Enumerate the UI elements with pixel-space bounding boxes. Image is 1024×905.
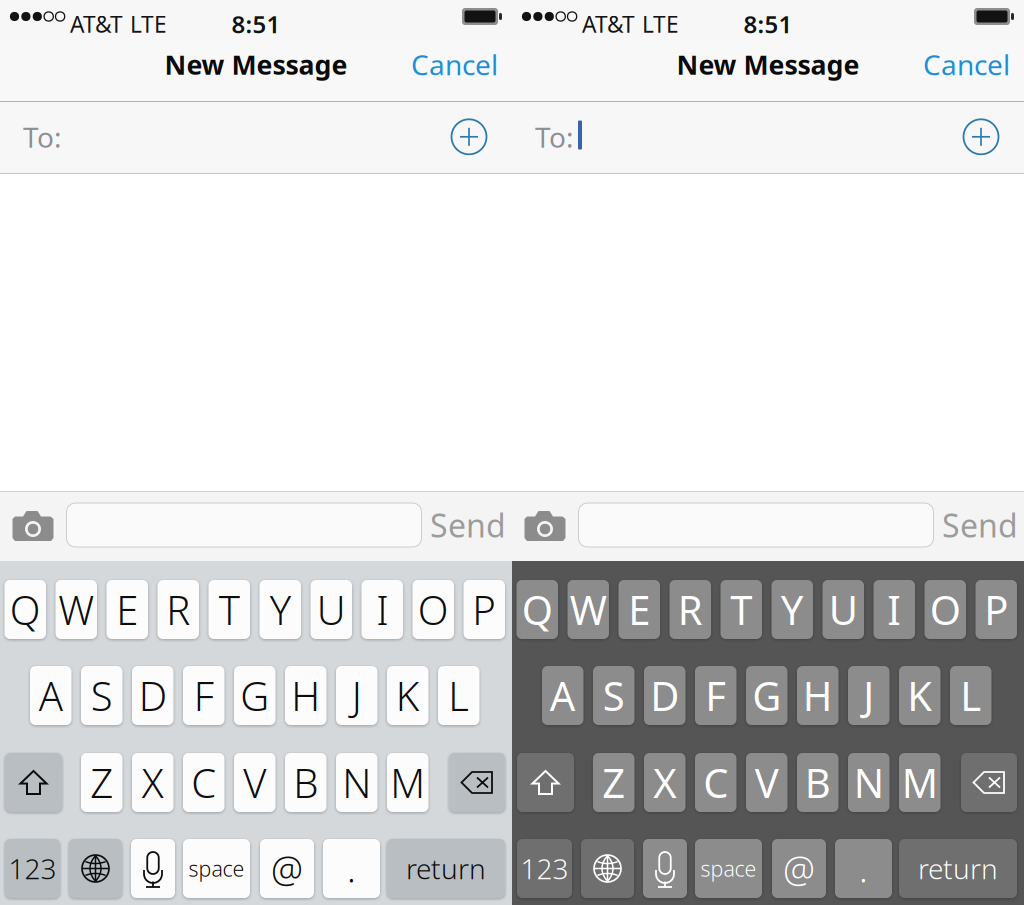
button[interactable]: . [323,839,380,898]
staticText: U [317,583,346,636]
button[interactable]: K [899,666,940,725]
button[interactable]: W [567,580,609,639]
button[interactable]: Next keyboard [69,839,122,898]
button[interactable]: I [361,580,403,639]
button[interactable]: O [412,580,454,639]
button[interactable]: M [899,753,940,812]
staticText: New Message [164,47,347,82]
button[interactable]: N [848,753,889,812]
button[interactable]: Send [940,503,1020,547]
button[interactable]: return [387,839,505,898]
staticText: Y [270,583,291,636]
staticText: . [859,845,868,892]
button[interactable]: Z [593,753,634,812]
button[interactable]: E [618,580,660,639]
staticText: 8:51 [743,8,792,40]
button[interactable]: S [81,666,122,725]
button[interactable]: Camera [524,511,565,541]
staticText: Y [781,583,804,636]
button[interactable]: return [899,839,1017,898]
staticText: . [347,845,356,892]
button[interactable]: J [848,666,889,725]
button[interactable]: P [975,580,1017,639]
button[interactable]: 123 [5,839,60,898]
button[interactable]: R [669,580,711,639]
button[interactable]: Q [4,580,46,639]
button[interactable]: I [873,580,915,639]
button[interactable]: Y [259,580,301,639]
button[interactable]: D [132,666,173,725]
button[interactable]: G [234,666,275,725]
button[interactable]: Add contact [451,119,486,154]
button[interactable]: X [132,753,173,812]
button[interactable]: Q [516,580,558,639]
button[interactable]: F [695,666,736,725]
staticText: J [352,669,362,722]
button[interactable]: Z [81,753,122,812]
button[interactable]: Cancel [388,42,498,86]
button[interactable]: Next keyboard [581,839,634,898]
button[interactable]: G [746,666,787,725]
button[interactable]: A [542,666,583,725]
button[interactable]: B [285,753,326,812]
staticText: return [918,850,998,887]
button[interactable]: Camera [12,511,53,541]
button[interactable]: Delete [961,753,1017,812]
staticText: W [570,583,607,636]
staticText: New Message [676,47,859,82]
button[interactable]: T [208,580,250,639]
button[interactable]: Delete [449,753,505,812]
button[interactable]: X [644,753,685,812]
button[interactable]: Send [428,503,508,547]
staticText: To: [535,118,574,156]
button[interactable]: C [695,753,736,812]
button[interactable]: R [157,580,199,639]
button[interactable]: S [593,666,634,725]
button[interactable]: U [822,580,864,639]
button[interactable]: B [797,753,838,812]
staticText: L [960,669,981,722]
button[interactable]: 123 [517,839,572,898]
button[interactable]: M [387,753,428,812]
staticText: To: [23,118,62,156]
button[interactable]: O [924,580,966,639]
staticText: Cancel [411,46,498,83]
button[interactable]: A [30,666,71,725]
button[interactable]: Y [771,580,813,639]
button[interactable]: T [720,580,762,639]
button[interactable]: V [746,753,787,812]
button[interactable]: @ [260,839,314,898]
button[interactable]: V [234,753,275,812]
button[interactable]: W [55,580,97,639]
button[interactable]: N [336,753,377,812]
button[interactable]: J [336,666,377,725]
staticText: H [291,669,320,722]
button[interactable]: Cancel [900,42,1010,86]
button[interactable]: H [285,666,326,725]
staticText: Send [430,504,506,546]
staticText: Send [942,504,1018,546]
button[interactable]: E [106,580,148,639]
button[interactable]: Add contact [963,119,998,154]
button[interactable]: space [695,839,762,898]
button[interactable]: @ [772,839,826,898]
button[interactable]: Shift [517,753,574,812]
button[interactable]: L [438,666,479,725]
button[interactable]: Dictation [643,839,687,898]
button[interactable]: D [644,666,685,725]
button[interactable]: H [797,666,838,725]
button[interactable]: space [183,839,250,898]
button[interactable]: Shift [5,753,62,812]
button[interactable]: Dictation [131,839,175,898]
staticText: return [406,850,486,887]
button[interactable]: P [463,580,505,639]
staticText: B [805,756,831,809]
button[interactable]: C [183,753,224,812]
staticText: R [678,583,703,636]
button[interactable]: F [183,666,224,725]
staticText: F [705,669,726,722]
button[interactable]: K [387,666,428,725]
button[interactable]: U [310,580,352,639]
button[interactable]: L [950,666,991,725]
button[interactable]: . [835,839,892,898]
